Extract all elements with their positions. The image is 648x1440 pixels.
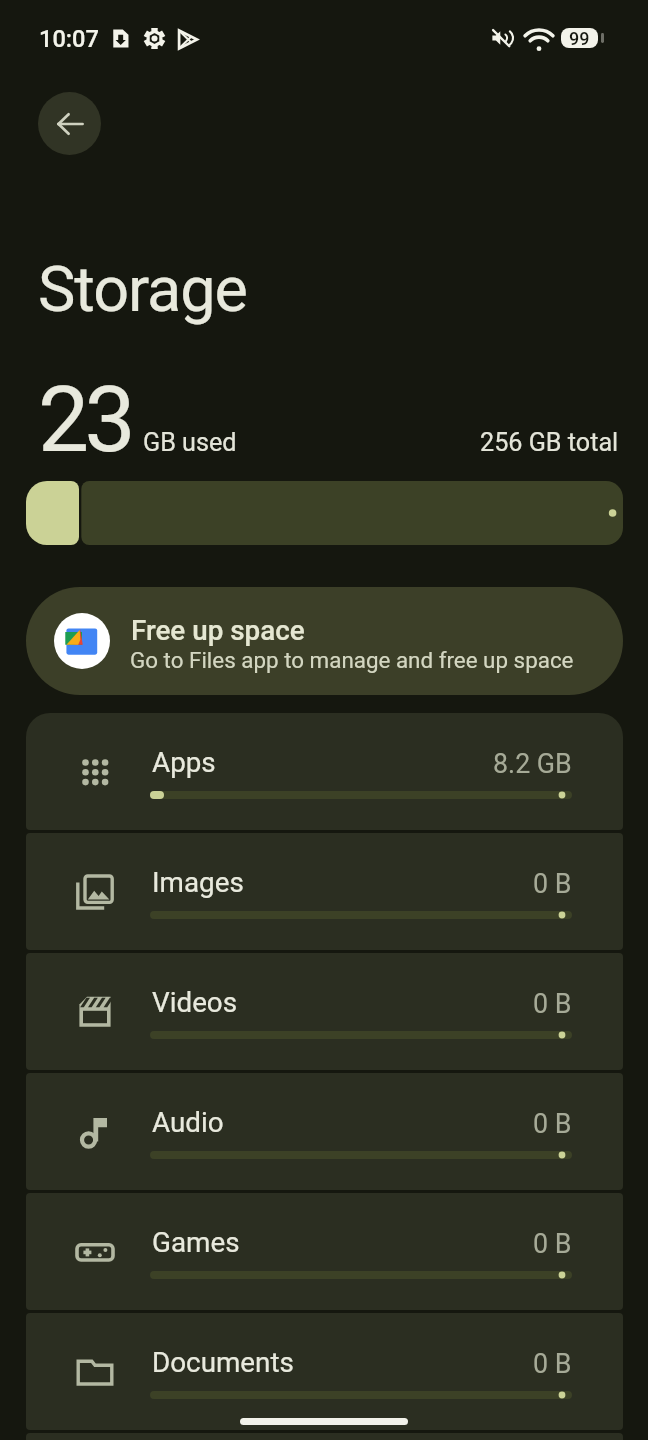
staticText: 23: [38, 367, 132, 474]
staticText: Images: [152, 866, 244, 899]
staticText: Storage: [38, 253, 247, 327]
staticText: Documents: [152, 1346, 294, 1379]
staticText: GB used: [143, 428, 237, 458]
button[interactable]: Documents: [26, 1313, 623, 1430]
staticText: 256 GB total: [480, 428, 619, 458]
button[interactable]: Images: [26, 833, 623, 950]
staticText: 0 B: [533, 868, 572, 899]
button[interactable]: Audio: [26, 1073, 623, 1190]
staticText: 0 B: [533, 1228, 572, 1259]
button[interactable]: Free up space: [26, 587, 623, 695]
staticText: Audio: [152, 1106, 224, 1139]
staticText: 0 B: [533, 1108, 572, 1139]
staticText: 0 B: [533, 1348, 572, 1379]
button[interactable]: Apps: [26, 713, 623, 830]
staticText: Apps: [152, 746, 216, 779]
staticText: 99: [569, 28, 590, 48]
staticText: Games: [152, 1226, 240, 1259]
button[interactable]: Videos: [26, 953, 623, 1070]
staticText: Go to Files app to manage and free up sp…: [130, 647, 574, 673]
staticText: 0 B: [533, 988, 572, 1019]
button[interactable]: Games: [26, 1193, 623, 1310]
staticText: 10:07: [39, 25, 99, 53]
staticText: Free up space: [131, 614, 305, 647]
staticText: Videos: [152, 986, 238, 1019]
button[interactable]: Back: [38, 92, 101, 155]
staticText: 8.2 GB: [493, 748, 572, 779]
